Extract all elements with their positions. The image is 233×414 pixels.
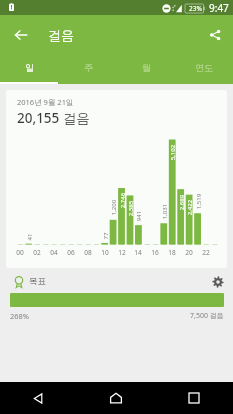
staticText: 2,746 (118, 192, 126, 208)
staticText: 18 (168, 248, 176, 257)
staticText: 5,102 (168, 144, 176, 160)
button[interactable]: 주 (59, 54, 117, 84)
staticText: 2,385 (126, 200, 134, 216)
staticText: 941 (134, 210, 142, 221)
button[interactable]: Back (0, 382, 77, 414)
staticText: 22 (202, 248, 210, 257)
staticText: 16 (151, 248, 159, 257)
button[interactable]: Settings (208, 272, 228, 292)
staticText: 월 (142, 62, 151, 73)
staticText: 일 (25, 62, 34, 73)
button[interactable]: 월 (117, 54, 175, 84)
button[interactable]: 일 (0, 54, 59, 84)
staticText: 1,031 (160, 203, 168, 219)
staticText: 04 (50, 248, 58, 257)
button[interactable]: Back (3, 17, 39, 53)
staticText: 목표 (29, 276, 46, 287)
staticText: 10 (101, 248, 109, 257)
staticText: 00 (16, 248, 24, 257)
staticText: 12 (118, 248, 126, 257)
button[interactable]: 연도 (175, 54, 233, 84)
staticText: 1,200 (109, 199, 117, 215)
staticText: 연도 (195, 62, 213, 73)
staticText: 02 (33, 248, 41, 257)
button[interactable]: Home (77, 382, 155, 414)
staticText: 1,519 (194, 193, 202, 209)
staticText: 268% (10, 311, 30, 321)
staticText: 9:47 (209, 1, 229, 15)
staticText: 20,155 걸음 (17, 109, 90, 127)
staticText: 2,422 (185, 199, 193, 215)
button[interactable]: Recents (155, 382, 233, 414)
staticText: 08 (84, 248, 92, 257)
staticText: 2016년 9월 21일 (17, 97, 74, 107)
staticText: 41 (25, 233, 33, 240)
staticText: 2,689 (177, 194, 185, 210)
button[interactable]: Share (197, 17, 233, 53)
staticText: 20 (185, 248, 193, 257)
staticText: 걸음 (48, 27, 74, 43)
staticText: 06 (67, 248, 75, 257)
staticText: 23% (189, 4, 202, 13)
staticText: 7,500 걸음 (190, 311, 224, 321)
staticText: 주 (84, 62, 93, 73)
staticText: 14 (134, 248, 142, 257)
staticText: 77 (101, 232, 109, 239)
